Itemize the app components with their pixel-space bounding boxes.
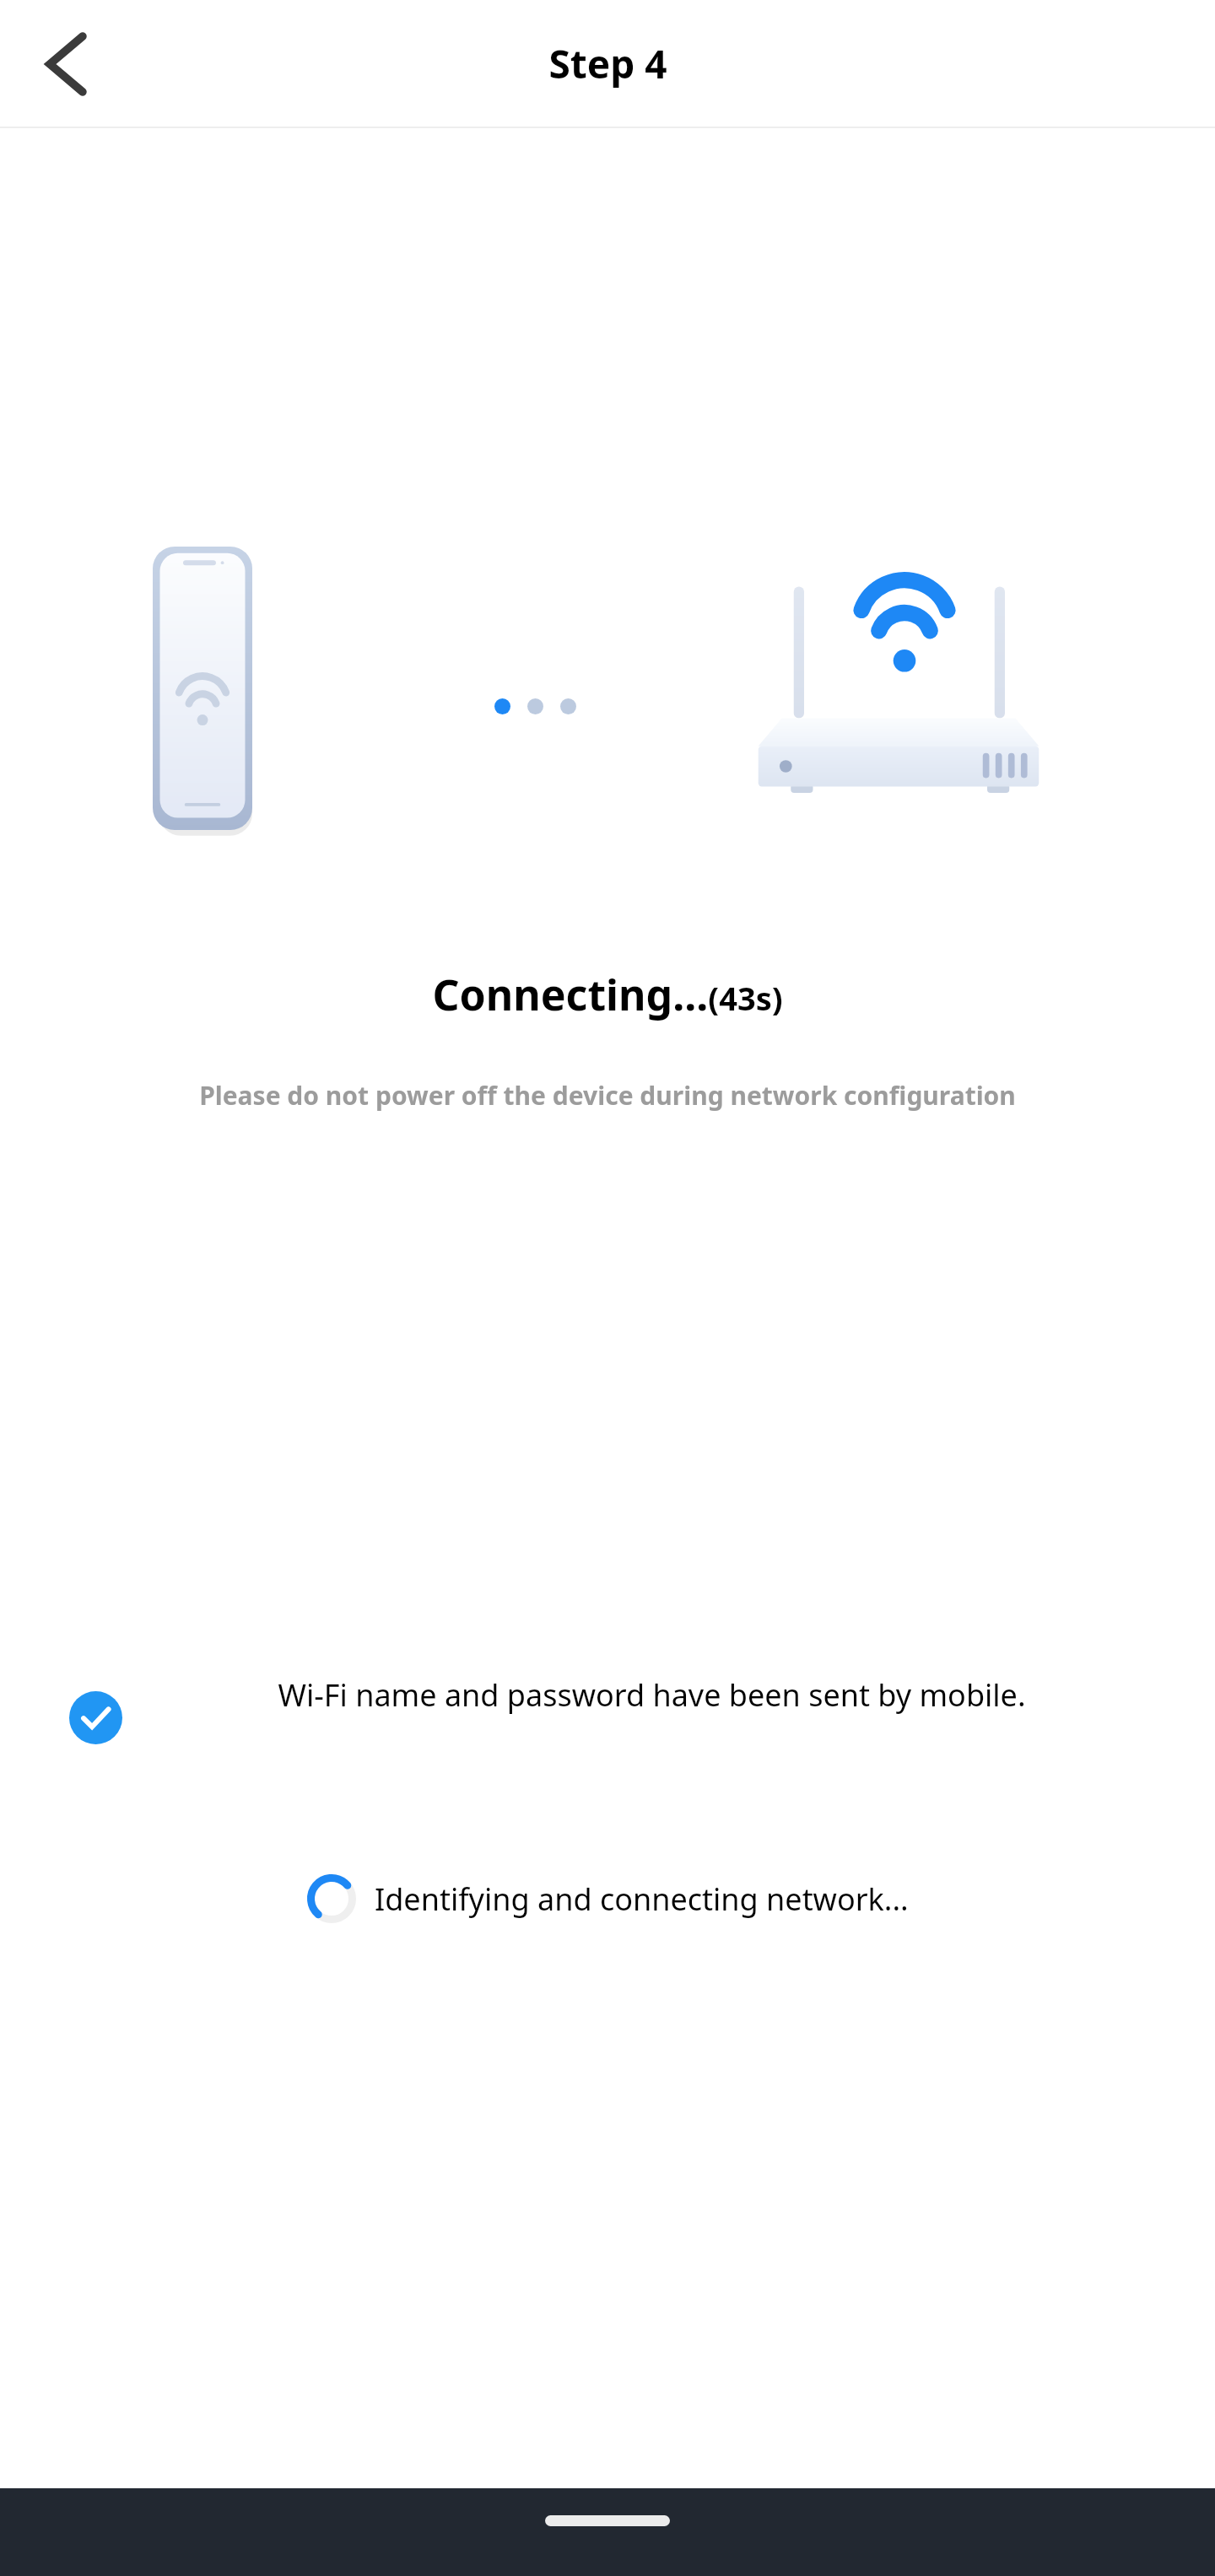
staticText: Please do not power off the device durin… — [199, 1078, 1016, 1113]
staticText: Connecting...(43s) — [432, 966, 783, 1023]
staticText: Wi-Fi name and password have been sent b… — [278, 1674, 1026, 1716]
button[interactable]: Identifying and connecting network... — [0, 1874, 1215, 1923]
button[interactable]: Wi-Fi name and password have been sent b… — [0, 1674, 1215, 1727]
staticText: Identifying and connecting network... — [375, 1878, 909, 1920]
button[interactable]: Back — [24, 30, 108, 98]
staticText: Step 4 — [548, 37, 667, 90]
